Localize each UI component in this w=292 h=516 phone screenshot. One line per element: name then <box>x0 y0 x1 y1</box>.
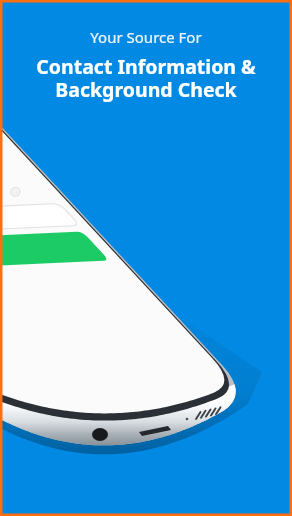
staticText: Your Source For <box>90 27 202 47</box>
staticText: Contact Information & Background Check <box>36 53 256 103</box>
